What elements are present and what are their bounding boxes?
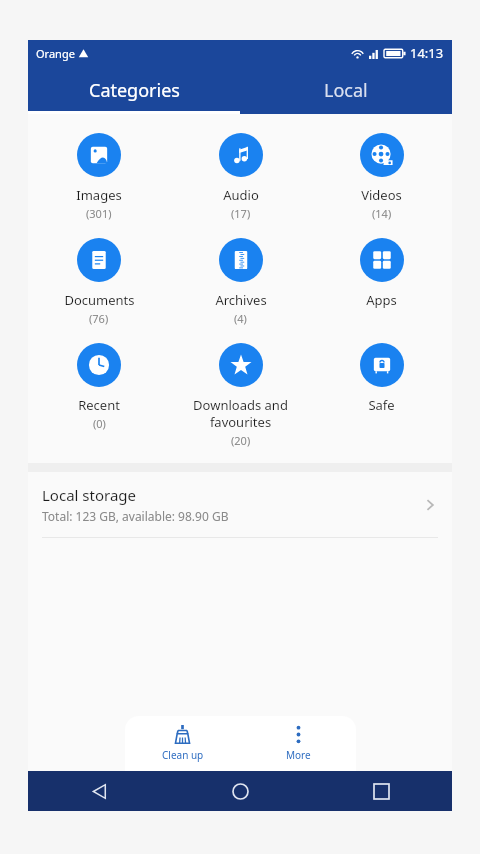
button[interactable]: Recents [311,771,452,811]
button[interactable]: More [240,716,356,771]
staticText: Safe [368,396,395,414]
staticText: Videos [361,186,402,204]
button[interactable]: Categories [28,66,240,114]
other: Open local storage [422,497,438,513]
staticText: (17) [231,206,251,221]
staticText: (0) [93,416,106,431]
button[interactable]: Safe [311,340,452,417]
button[interactable]: Audio [170,130,311,224]
staticText: (76) [89,311,109,326]
staticText: Categories [89,78,180,103]
staticText: Total: 123 GB, available: 98.90 GB [42,508,229,524]
button[interactable]: Local storage [28,472,452,537]
button[interactable]: Home [170,771,311,811]
button[interactable]: Clean up [125,716,240,771]
button[interactable]: Apps [311,235,452,312]
button[interactable]: Videos [311,130,452,224]
button[interactable]: Downloads and favourites [170,340,311,451]
staticText: 14:13 [410,44,444,62]
staticText: (4) [234,311,247,326]
staticText: (14) [372,206,392,221]
staticText: Documents [64,291,135,309]
button[interactable]: Local [240,66,452,114]
staticText: Archives [215,291,267,309]
staticText: (20) [231,433,251,448]
staticText: Images [76,186,122,204]
staticText: Apps [366,291,397,309]
staticText: Clean up [162,748,204,762]
staticText: More [286,748,311,762]
staticText: Orange [36,46,75,61]
button[interactable]: Back [28,771,170,811]
button[interactable]: Recent [28,340,170,434]
staticText: Local storage [42,485,136,505]
button[interactable]: Documents [28,235,170,329]
staticText: (301) [86,206,112,221]
staticText: Downloads and favourites [193,396,288,431]
staticText: Audio [223,186,259,204]
button[interactable]: Archives [170,235,311,329]
staticText: Recent [78,396,120,414]
button[interactable]: Images [28,130,170,224]
staticText: Local [324,78,368,103]
